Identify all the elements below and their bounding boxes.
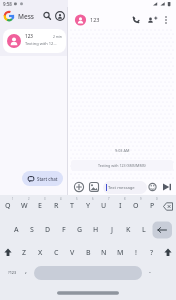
button[interactable]: ,	[18, 262, 34, 280]
button[interactable]: B	[80, 244, 96, 262]
staticText: ?123	[8, 270, 17, 275]
button[interactable]: I	[112, 197, 128, 215]
staticText: X	[38, 248, 43, 258]
staticText: S	[30, 225, 34, 235]
staticText: 1	[12, 197, 14, 201]
staticText: F	[62, 225, 66, 235]
staticText: ?	[150, 248, 154, 258]
staticText: Text message	[108, 185, 135, 191]
staticText: T	[70, 201, 74, 211]
button[interactable]: W	[16, 197, 32, 215]
staticText: N	[101, 248, 107, 258]
staticText: 9	[140, 197, 142, 201]
button[interactable]	[74, 181, 85, 192]
staticText: L	[142, 225, 146, 235]
staticText: Z	[22, 248, 27, 258]
staticText: Texting with 123 (SMS/MMS)	[98, 163, 146, 168]
staticText: U	[101, 201, 107, 211]
button[interactable]: Q	[0, 197, 16, 215]
staticText: P	[150, 201, 155, 211]
button[interactable]: Text message	[103, 181, 147, 194]
button[interactable]: A	[8, 221, 24, 239]
button[interactable]: L	[136, 221, 152, 239]
staticText: ,	[25, 266, 27, 276]
staticText: W	[21, 201, 28, 211]
staticText: 8	[124, 197, 126, 201]
button[interactable]: Y	[80, 197, 96, 215]
staticText: 6	[92, 197, 94, 201]
button[interactable]	[130, 14, 142, 26]
button[interactable]: ?	[144, 244, 160, 262]
button[interactable]: O	[128, 197, 144, 215]
staticText: A	[14, 225, 19, 235]
staticText: K	[126, 225, 131, 235]
button[interactable]: P	[144, 197, 160, 215]
staticText: H	[93, 225, 99, 235]
staticText: 123	[90, 16, 100, 23]
button[interactable]: D	[40, 221, 56, 239]
staticText: Mess	[18, 12, 35, 21]
button[interactable]	[0, 244, 16, 262]
staticText: I	[119, 201, 122, 211]
button[interactable]: F	[56, 221, 72, 239]
button[interactable]: T	[64, 197, 80, 215]
button[interactable]	[160, 244, 176, 262]
button[interactable]: X	[32, 244, 48, 262]
staticText: B	[86, 248, 91, 258]
staticText: 9:58	[3, 1, 12, 7]
staticText: 7	[108, 197, 110, 201]
button[interactable]: !	[128, 244, 144, 262]
staticText: 4	[60, 197, 62, 201]
button[interactable]	[152, 221, 172, 239]
staticText: D	[45, 225, 51, 235]
button[interactable]: M	[112, 244, 128, 262]
button[interactable]	[160, 181, 172, 193]
staticText: G	[77, 225, 83, 235]
staticText: 3	[44, 197, 46, 201]
staticText: E	[38, 201, 42, 211]
staticText: Y	[86, 201, 91, 211]
staticText: 2	[28, 197, 30, 201]
staticText: Q	[5, 201, 11, 211]
button[interactable]: Start chat	[22, 171, 63, 186]
button[interactable]: ?123	[2, 264, 22, 281]
button[interactable]: G	[72, 221, 88, 239]
staticText: M	[117, 248, 124, 258]
button[interactable]: E	[32, 197, 48, 215]
button[interactable]: H	[88, 221, 104, 239]
button[interactable]	[160, 14, 172, 26]
button[interactable]: K	[120, 221, 136, 239]
staticText: 9:03 AM	[115, 148, 130, 153]
button[interactable]: .	[142, 262, 158, 280]
button[interactable]: S	[24, 221, 40, 239]
button[interactable]: 123	[3, 29, 66, 53]
button[interactable]: U	[96, 197, 112, 215]
button[interactable]	[88, 181, 99, 192]
staticText: 0	[156, 197, 158, 201]
staticText: C	[54, 248, 59, 258]
staticText: Start chat	[37, 176, 58, 182]
staticText: !	[135, 248, 137, 258]
button[interactable]: R	[48, 197, 64, 215]
staticText: .	[149, 266, 151, 276]
staticText: 5	[76, 197, 78, 201]
button[interactable]: J	[104, 221, 120, 239]
staticText: J	[111, 225, 114, 235]
button[interactable]: Z	[16, 244, 32, 262]
staticText: 2 min	[53, 34, 62, 39]
button[interactable]	[34, 266, 142, 280]
button[interactable]: N	[96, 244, 112, 262]
staticText: O	[133, 201, 139, 211]
button[interactable]	[145, 14, 157, 26]
staticText: R	[54, 201, 59, 211]
staticText: Texting with 12...	[25, 41, 57, 46]
staticText: 123	[25, 33, 33, 39]
button[interactable]: C	[48, 244, 64, 262]
staticText: V	[70, 248, 75, 258]
button[interactable]	[148, 182, 157, 191]
button[interactable]	[160, 197, 176, 215]
button[interactable]: V	[64, 244, 80, 262]
